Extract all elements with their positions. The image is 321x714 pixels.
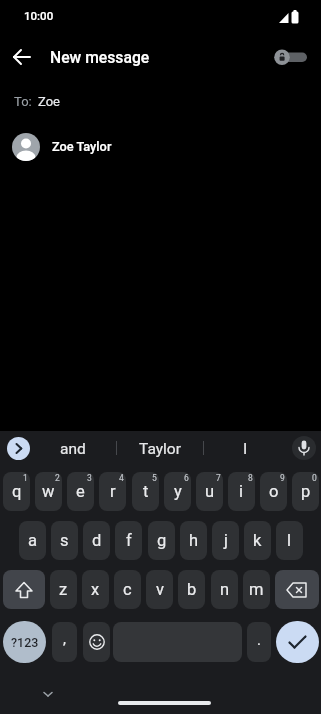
staticText: Zoe Taylor bbox=[52, 139, 112, 154]
staticText: e bbox=[76, 482, 85, 501]
button[interactable] bbox=[83, 622, 110, 662]
staticText: s bbox=[60, 531, 69, 550]
button[interactable]: I bbox=[203, 431, 288, 467]
button[interactable]: b bbox=[178, 570, 205, 609]
button[interactable]: and bbox=[38, 431, 108, 467]
button[interactable]: e bbox=[67, 472, 94, 511]
staticText: t bbox=[143, 482, 149, 501]
button[interactable] bbox=[3, 570, 45, 609]
staticText: . bbox=[257, 631, 261, 649]
button[interactable]: i bbox=[228, 472, 255, 511]
staticText: r bbox=[110, 482, 116, 501]
staticText: 0 bbox=[312, 473, 317, 483]
staticText: 7 bbox=[216, 473, 221, 483]
button[interactable] bbox=[270, 43, 314, 71]
staticText: f bbox=[126, 531, 132, 550]
staticText: l bbox=[287, 531, 292, 550]
button[interactable]: o bbox=[260, 472, 287, 511]
button[interactable]: x bbox=[82, 570, 109, 609]
staticText: n bbox=[220, 580, 230, 599]
staticText: b bbox=[187, 580, 197, 599]
button[interactable]: Zoe Taylor bbox=[0, 125, 321, 169]
staticText: 10:00 bbox=[24, 9, 54, 22]
staticText: g bbox=[157, 531, 167, 550]
staticText: p bbox=[301, 482, 311, 501]
button[interactable]: s bbox=[51, 521, 78, 560]
button[interactable]: w bbox=[35, 472, 62, 511]
button[interactable]: t bbox=[132, 472, 159, 511]
staticText: 8 bbox=[248, 473, 253, 483]
staticText: 9 bbox=[280, 473, 285, 483]
button[interactable] bbox=[7, 437, 30, 460]
button[interactable]: u bbox=[196, 472, 223, 511]
staticText: and bbox=[60, 440, 86, 458]
staticText: 2 bbox=[55, 473, 60, 483]
button[interactable]: r bbox=[99, 472, 126, 511]
button[interactable]: d bbox=[83, 521, 110, 560]
staticText: y bbox=[174, 482, 182, 501]
staticText: u bbox=[205, 482, 215, 501]
staticText: v bbox=[156, 580, 164, 599]
staticText: k bbox=[253, 531, 262, 550]
button[interactable]: p bbox=[292, 472, 319, 511]
staticText: a bbox=[28, 531, 37, 550]
button[interactable]: , bbox=[52, 622, 77, 662]
button[interactable]: a bbox=[19, 521, 46, 560]
button[interactable]: . bbox=[247, 622, 271, 662]
button[interactable] bbox=[292, 436, 316, 460]
staticText: i bbox=[239, 482, 244, 501]
staticText: c bbox=[123, 580, 132, 599]
staticText: , bbox=[63, 630, 66, 648]
button[interactable]: l bbox=[276, 521, 303, 560]
staticText: m bbox=[249, 580, 264, 599]
staticText: o bbox=[269, 482, 279, 501]
staticText: To: bbox=[14, 94, 32, 109]
button[interactable]: ?123 bbox=[3, 621, 46, 663]
staticText: 6 bbox=[184, 473, 189, 483]
staticText: d bbox=[92, 531, 102, 550]
button[interactable]: n bbox=[211, 570, 238, 609]
button[interactable]: j bbox=[212, 521, 239, 560]
button[interactable]: v bbox=[146, 570, 173, 609]
button[interactable] bbox=[275, 570, 319, 609]
staticText: 5 bbox=[152, 473, 157, 483]
button[interactable]: h bbox=[180, 521, 207, 560]
staticText: ?123 bbox=[11, 635, 39, 650]
staticText: Zoe bbox=[38, 94, 60, 109]
button[interactable]: f bbox=[115, 521, 142, 560]
staticText: 1 bbox=[23, 473, 28, 483]
button[interactable] bbox=[276, 621, 319, 663]
staticText: 4 bbox=[119, 473, 124, 483]
staticText: w bbox=[42, 482, 55, 501]
button[interactable] bbox=[6, 41, 38, 73]
button[interactable]: g bbox=[148, 521, 175, 560]
staticText: j bbox=[224, 531, 228, 550]
staticText: 3 bbox=[87, 473, 92, 483]
staticText: I bbox=[243, 440, 248, 458]
button[interactable]: m bbox=[243, 570, 270, 609]
button[interactable]: y bbox=[164, 472, 191, 511]
button[interactable]: q bbox=[3, 472, 30, 511]
staticText: x bbox=[91, 580, 100, 599]
button[interactable] bbox=[0, 85, 321, 117]
button[interactable]: c bbox=[114, 570, 141, 609]
button[interactable]: k bbox=[244, 521, 271, 560]
button[interactable]: z bbox=[50, 570, 77, 609]
staticText: z bbox=[59, 580, 68, 599]
staticText: q bbox=[12, 482, 22, 501]
staticText: h bbox=[189, 531, 199, 550]
button[interactable]: Taylor bbox=[116, 431, 203, 467]
staticText: Taylor bbox=[139, 440, 181, 458]
staticText: New message bbox=[50, 48, 150, 66]
